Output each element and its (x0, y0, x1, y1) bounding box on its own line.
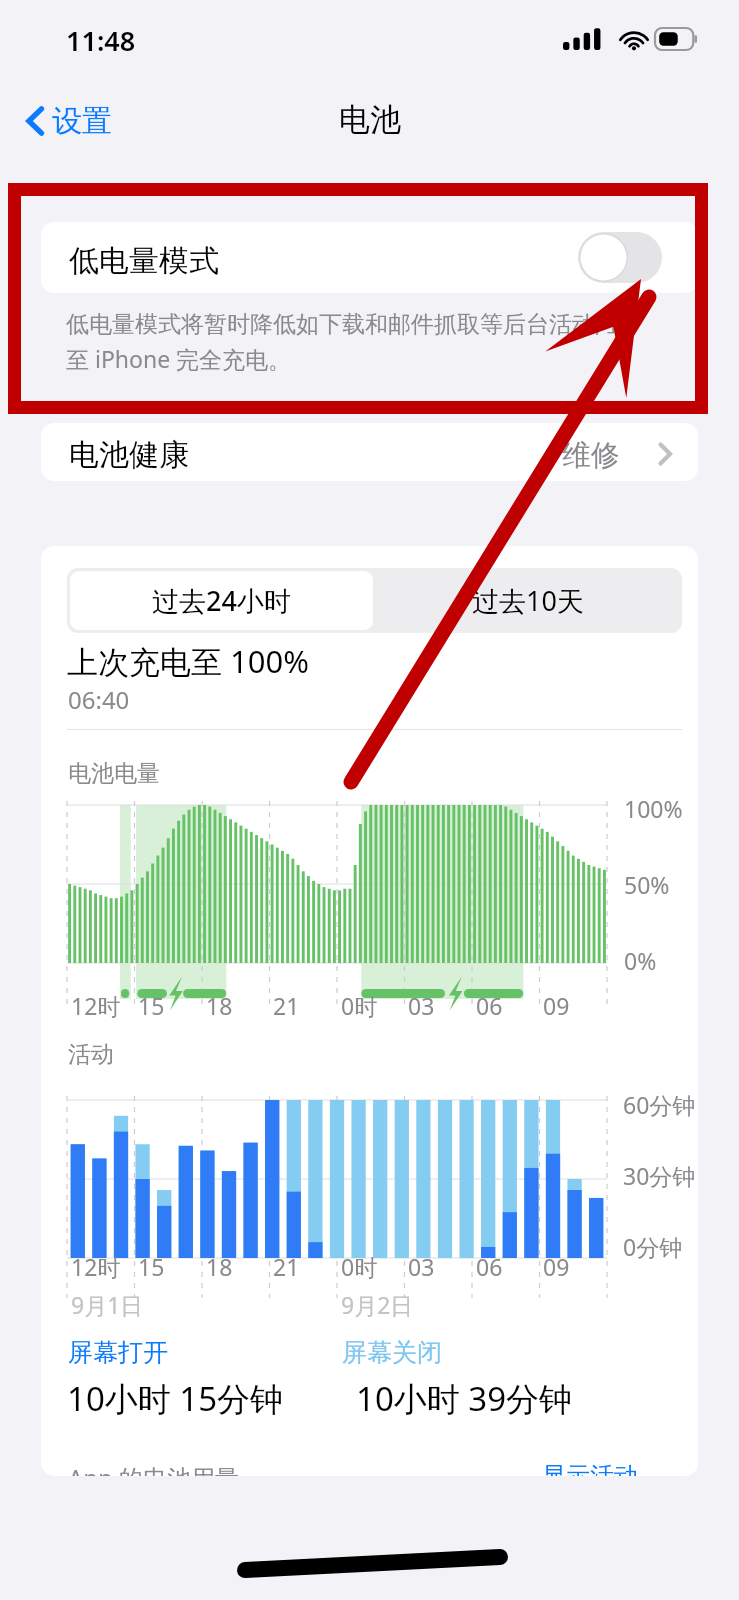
staticText: 30分钟 (623, 1160, 696, 1191)
staticText: 低电量模式将暂时降低如下载和邮件抓取等后台活动, 直 (66, 307, 631, 338)
staticText: 电池 (339, 100, 401, 139)
button[interactable]: 过去24小时 (70, 571, 373, 630)
staticText: 过去24小时 (152, 582, 291, 619)
staticText: 15 (138, 990, 165, 1021)
staticText: 09 (543, 990, 570, 1021)
staticText: 21 (273, 990, 300, 1021)
staticText: 11:48 (66, 22, 136, 59)
staticText: 50% (624, 869, 670, 900)
staticText: 9月1日 (71, 1289, 144, 1320)
button[interactable]: 设置 (18, 96, 120, 146)
button[interactable]: 低电量模式开关 (578, 232, 662, 283)
button[interactable]: 显示活动 (538, 1457, 642, 1476)
staticText: 100% (624, 793, 683, 824)
staticText: 0% (624, 945, 657, 976)
button[interactable]: 低电量模式 (41, 222, 698, 293)
staticText: 10小时 39分钟 (356, 1376, 573, 1421)
staticText: 维修 (562, 437, 620, 474)
button[interactable]: 电池健康 (41, 423, 698, 481)
staticText: 21 (273, 1251, 300, 1282)
staticText: 上次充电至 100% (67, 640, 310, 682)
staticText: 0时 (341, 990, 378, 1021)
staticText: 03 (408, 990, 435, 1021)
staticText: 15 (138, 1251, 165, 1282)
staticText: 低电量模式 (69, 242, 219, 280)
staticText: 设置 (52, 102, 112, 140)
staticText: 18 (206, 990, 233, 1021)
staticText: 屏幕打开 (68, 1337, 168, 1368)
staticText: 过去10天 (472, 582, 584, 619)
staticText: 60分钟 (623, 1089, 696, 1120)
staticText: 12时 (71, 990, 121, 1021)
staticText: 12时 (71, 1251, 121, 1282)
staticText: 活动 (68, 1040, 114, 1069)
staticText: 屏幕关闭 (342, 1337, 442, 1368)
staticText: 电池健康 (69, 436, 189, 474)
staticText: 0分钟 (623, 1231, 683, 1262)
staticText: 03 (408, 1251, 435, 1282)
button[interactable]: 过去10天 (376, 571, 679, 630)
staticText: 至 iPhone 完全充电。 (66, 343, 292, 374)
staticText: App 的电池用量 (68, 1461, 240, 1476)
staticText: 10小时 15分钟 (67, 1376, 284, 1421)
staticText: 06 (476, 990, 503, 1021)
staticText: 0时 (341, 1251, 378, 1282)
staticText: 显示活动 (542, 1461, 638, 1476)
staticText: 18 (206, 1251, 233, 1282)
staticText: 电池电量 (68, 759, 160, 788)
staticText: 06 (476, 1251, 503, 1282)
staticText: 09 (543, 1251, 570, 1282)
staticText: 06:40 (68, 683, 130, 716)
staticText: 9月2日 (341, 1289, 414, 1320)
